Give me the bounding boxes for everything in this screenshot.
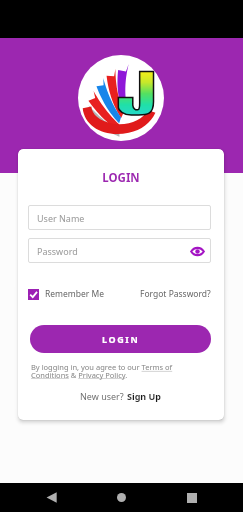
button[interactable]: Sign Up [127, 390, 162, 402]
button[interactable]: Password [28, 238, 211, 263]
staticText: Password [37, 245, 78, 257]
button[interactable]: Remember Me [28, 288, 105, 300]
staticText: New user? [80, 390, 127, 402]
button[interactable]: User Name [28, 205, 211, 230]
staticText: By logging in, you agree to our Terms of… [31, 362, 179, 380]
button[interactable]: Forgot Password? [140, 288, 211, 300]
button[interactable]: Home [108, 484, 135, 511]
staticText: LOGIN [102, 333, 140, 345]
button[interactable]: LOGIN [30, 325, 211, 353]
staticText: Remember Me [45, 288, 105, 300]
button[interactable]: Recent apps [178, 484, 205, 511]
button[interactable]: Back [38, 484, 65, 511]
button[interactable]: Show password [190, 244, 204, 258]
staticText: User Name [37, 212, 85, 224]
staticText: LOGIN [18, 170, 224, 186]
